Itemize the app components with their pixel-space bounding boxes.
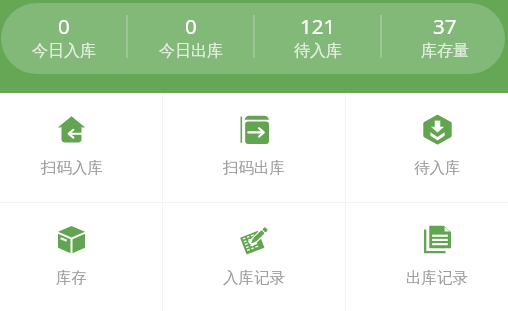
staticText: 0 xyxy=(185,12,197,40)
staticText: 扫码入库 xyxy=(41,158,103,178)
staticText: 待入库 xyxy=(414,158,461,178)
button[interactable]: 扫码入库 xyxy=(0,93,162,202)
button[interactable]: 0 xyxy=(0,0,127,74)
staticText: 入库记录 xyxy=(223,268,285,288)
button[interactable]: 入库记录 xyxy=(163,203,345,311)
staticText: 扫码出库 xyxy=(223,158,285,178)
button[interactable]: 出库记录 xyxy=(346,203,508,311)
button[interactable]: 121 xyxy=(254,0,381,74)
staticText: 121 xyxy=(300,12,336,40)
staticText: 出库记录 xyxy=(406,268,468,288)
staticText: 今日出库 xyxy=(159,41,223,61)
staticText: 库存 xyxy=(56,268,87,288)
staticText: 待入库 xyxy=(294,41,342,61)
staticText: 0 xyxy=(58,12,70,40)
button[interactable]: 0 xyxy=(127,0,254,74)
button[interactable]: 库存 xyxy=(0,203,162,311)
button[interactable]: 待入库 xyxy=(346,93,508,202)
staticText: 37 xyxy=(433,12,457,40)
button[interactable]: 扫码出库 xyxy=(163,93,345,202)
staticText: 今日入库 xyxy=(32,41,96,61)
staticText: 库存量 xyxy=(421,41,469,61)
button[interactable]: 37 xyxy=(381,0,508,74)
